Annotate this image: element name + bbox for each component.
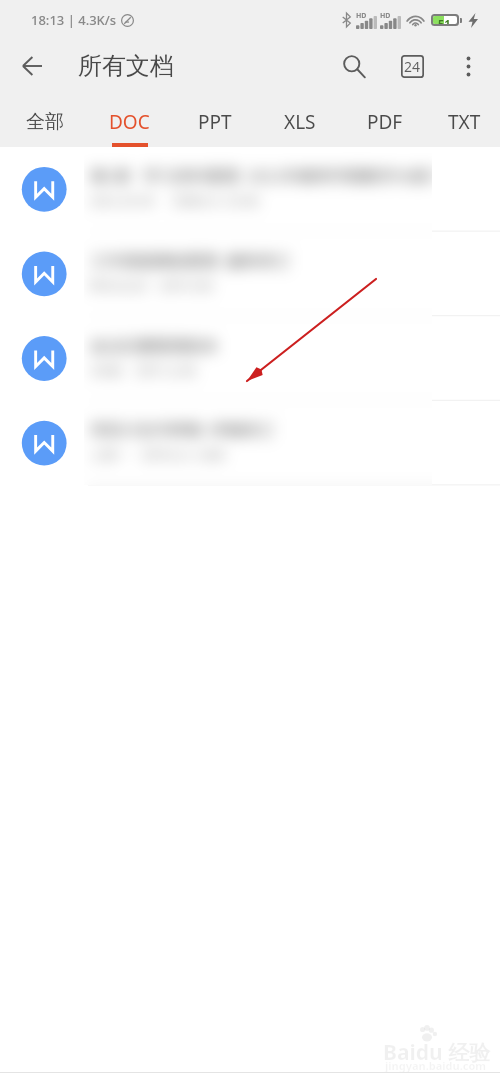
staticText: PDF [367,109,403,135]
staticText: 24 [404,57,421,76]
button[interactable]: PDF [342,92,427,147]
staticText: 所有文档 [78,51,174,81]
button[interactable]: DOC [87,92,172,147]
staticText: jingyan.baidu.com [385,1058,487,1073]
staticText: HD [380,11,391,21]
staticText: 51 [438,16,451,24]
button[interactable]: PPT [172,92,257,147]
staticText: HD [356,11,367,21]
button[interactable]: 全部 [2,92,87,147]
staticText: TXT [448,109,481,135]
staticText: PPT [198,109,232,135]
staticText: XLS [284,109,316,135]
staticText: DOC [109,109,150,135]
button[interactable]: Search [330,42,378,90]
staticText: Baidu 经验 [383,1038,491,1067]
button[interactable]: Calendar 24 [388,42,436,90]
button[interactable] [0,147,500,485]
staticText: 全部 [26,110,64,134]
button[interactable]: TXT [427,92,500,147]
button[interactable]: Back [8,42,56,90]
button[interactable]: XLS [257,92,342,147]
button[interactable]: More options [445,43,491,89]
staticText: 18:13 | 4.3K/s [31,11,117,29]
